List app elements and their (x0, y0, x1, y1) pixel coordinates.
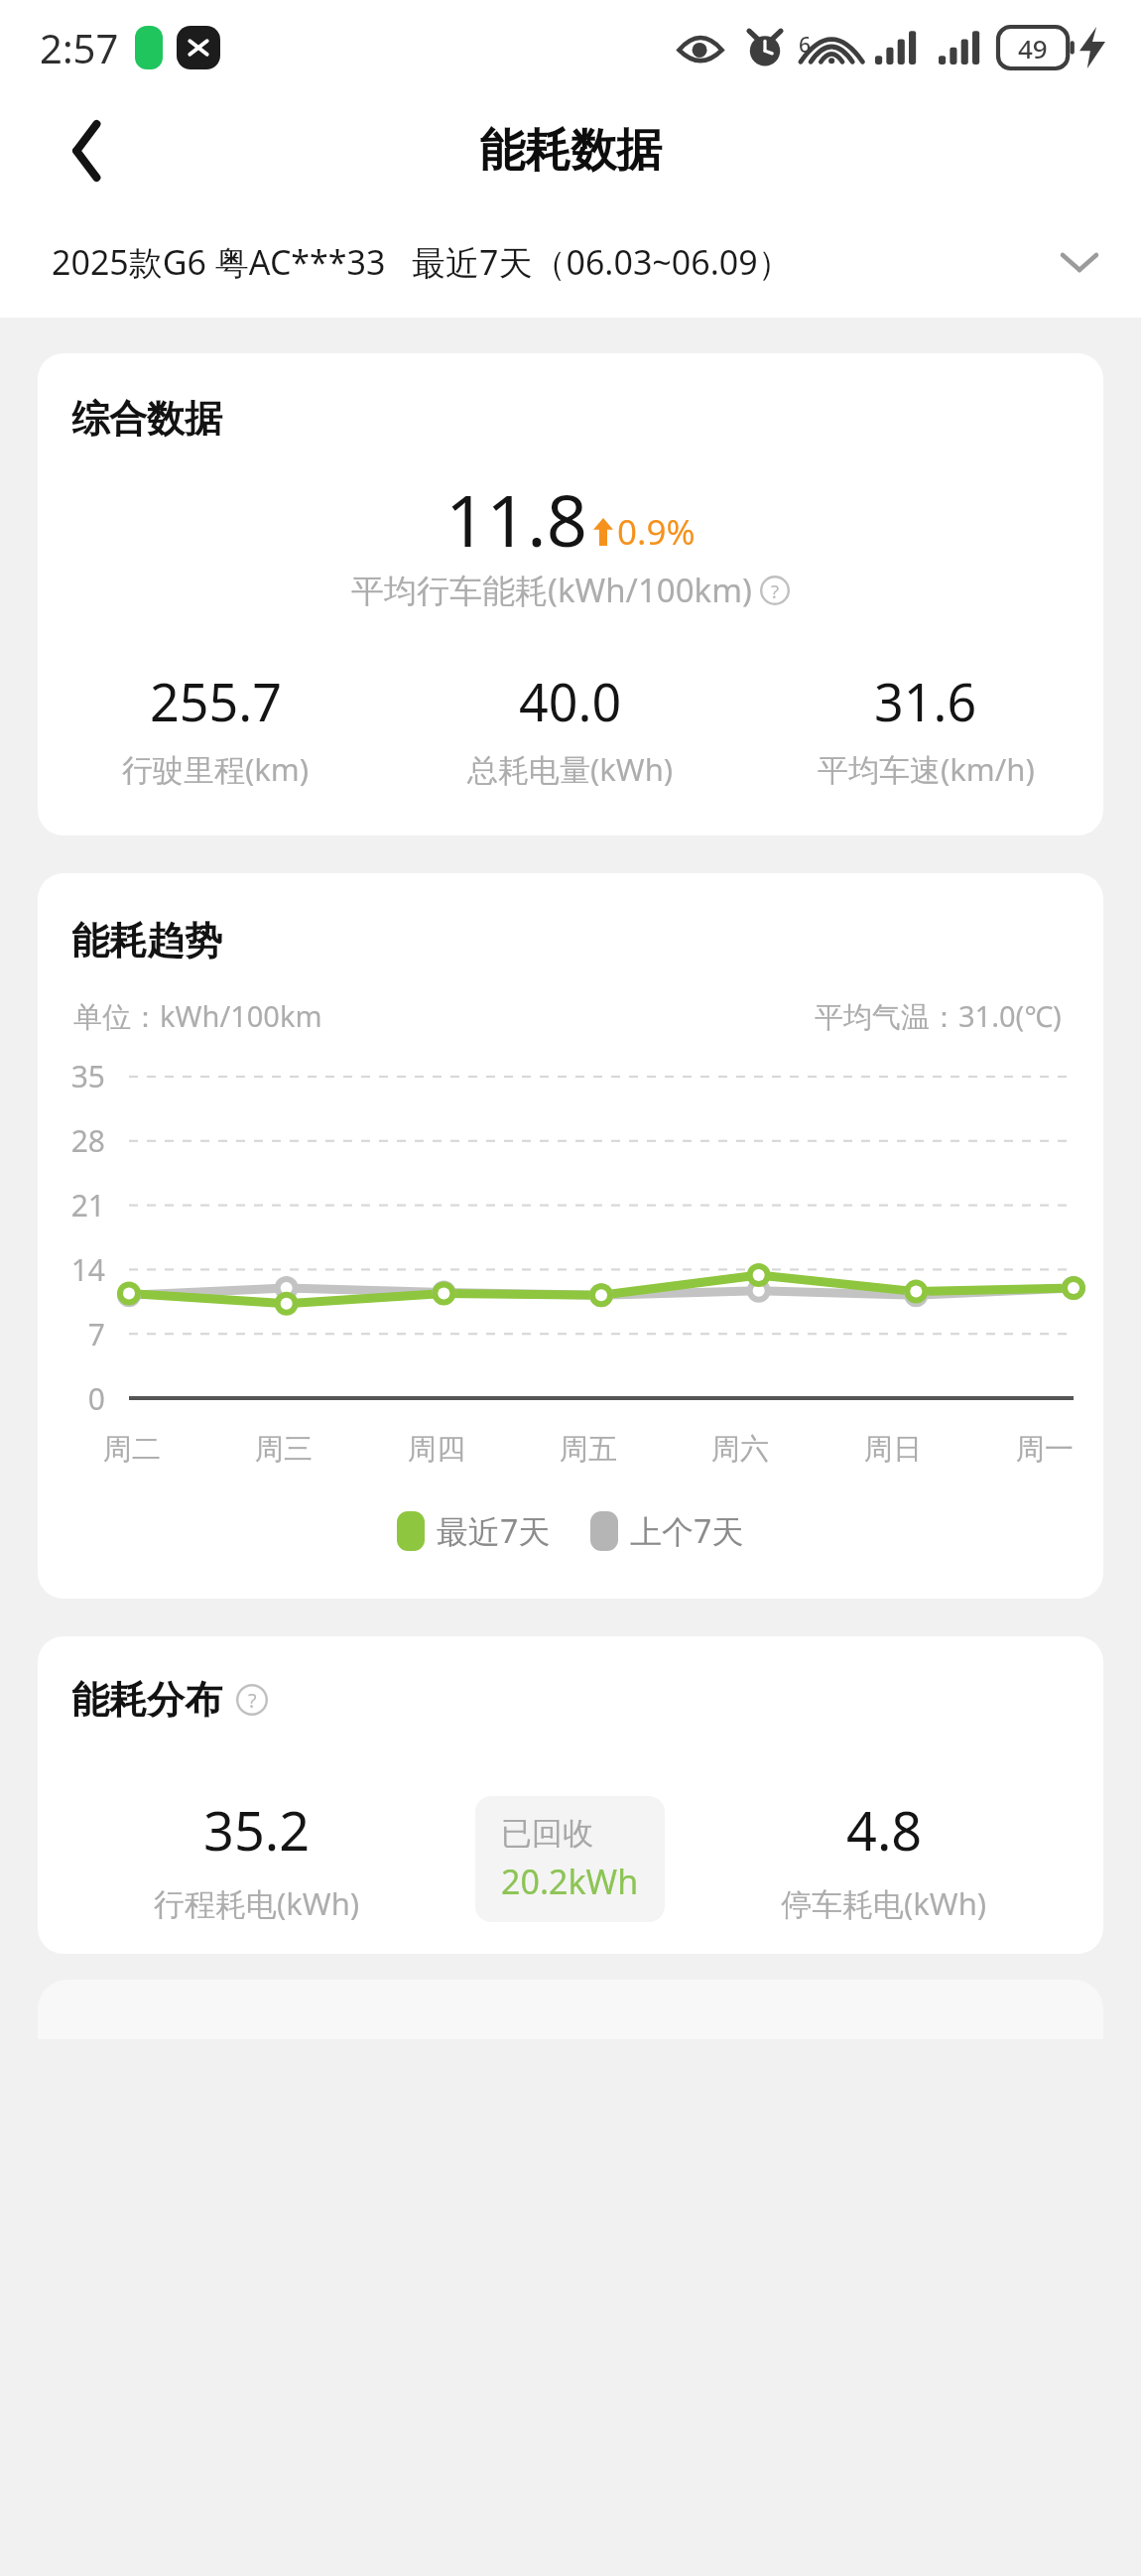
staticText: 周一 (1016, 1431, 1074, 1468)
staticText: 停车耗电(kWh) (781, 1882, 987, 1924)
staticText: 能耗趋势 (71, 917, 222, 965)
staticText: 平均车速(km/h) (818, 748, 1035, 790)
staticText: 最近7天 (437, 1509, 551, 1553)
staticText: 能耗数据 (479, 122, 662, 180)
staticText: 平均气温：31.0(℃) (815, 996, 1062, 1036)
staticText: 11.8 (445, 470, 587, 568)
staticText: 2:57 (40, 21, 119, 74)
staticText: 平均行车能耗(kWh/100km) (351, 568, 752, 612)
staticText: 周日 (864, 1431, 922, 1468)
staticText: 6 (799, 31, 812, 60)
staticText: 行驶里程(km) (122, 748, 310, 790)
staticText: 总耗电量(kWh) (467, 748, 674, 790)
staticText: 40.0 (519, 666, 622, 736)
staticText: 7 (60, 1314, 105, 1354)
staticText: 31.6 (874, 666, 977, 736)
button[interactable]: 2025款G6 粤AC***33 (0, 206, 1141, 318)
staticText: ? (771, 579, 780, 603)
staticText: 255.7 (150, 666, 282, 736)
staticText: 周二 (103, 1431, 161, 1468)
staticText: 综合数据 (71, 395, 222, 443)
staticText: 能耗分布 (71, 1676, 222, 1724)
staticText: 最近7天（06.03~06.09） (412, 239, 792, 285)
staticText: 周四 (408, 1431, 465, 1468)
staticText: 单位：kWh/100km (73, 996, 322, 1036)
staticText: 已回收 (501, 1814, 593, 1853)
staticText: 0 (60, 1378, 105, 1419)
staticText: ? (248, 1687, 257, 1714)
staticText: 周三 (255, 1431, 313, 1468)
staticText: 2025款G6 粤AC***33 (52, 239, 386, 285)
staticText: 4.8 (846, 1793, 923, 1867)
staticText: 28 (60, 1120, 105, 1161)
staticText: 行程耗电(kWh) (154, 1882, 360, 1924)
staticText: 35.2 (203, 1793, 311, 1867)
button[interactable]: Back (46, 110, 127, 192)
staticText: 21 (60, 1185, 105, 1225)
staticText: 0.9% (617, 508, 696, 556)
staticText: 35 (60, 1056, 105, 1096)
staticText: 20.2kWh (501, 1859, 639, 1904)
staticText: 49 (1018, 31, 1048, 65)
staticText: 上个7天 (630, 1509, 744, 1553)
staticText: 周五 (560, 1431, 617, 1468)
staticText: 14 (60, 1249, 105, 1290)
staticText: 周六 (711, 1431, 769, 1468)
